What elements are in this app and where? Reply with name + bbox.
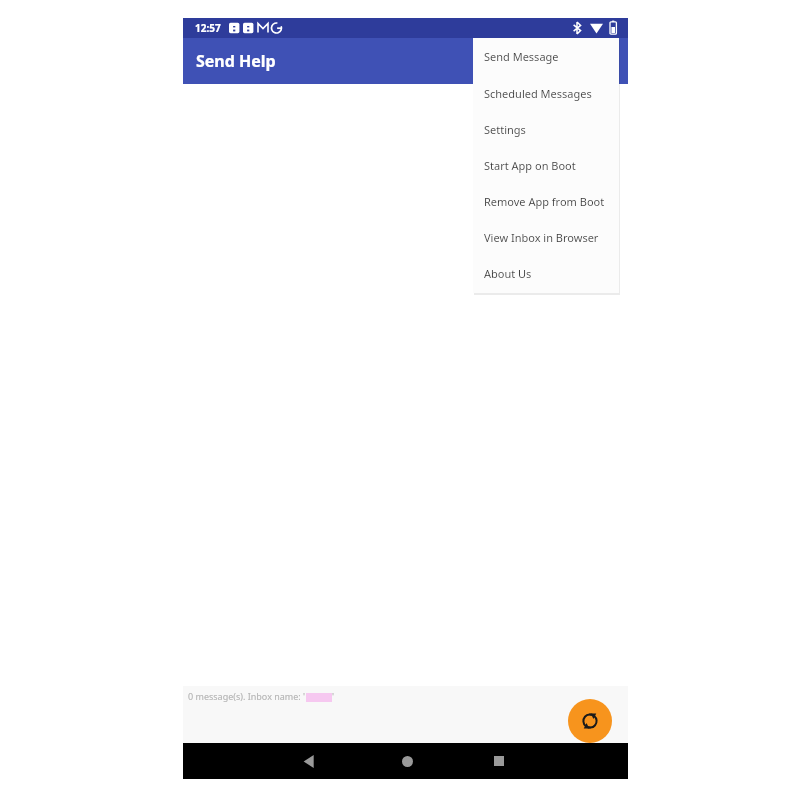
staticText: Scheduled Messages — [484, 86, 592, 101]
staticText: ' — [332, 690, 335, 702]
button[interactable]: View Inbox in Browser — [473, 219, 619, 255]
staticText: Remove App from Boot — [484, 194, 605, 209]
button[interactable]: Start App on Boot — [473, 147, 619, 183]
button[interactable]: Refresh inbox — [568, 699, 612, 743]
staticText: Send Message — [484, 49, 559, 64]
staticText: 12:57 — [195, 21, 221, 35]
button[interactable]: Home — [389, 743, 425, 779]
button[interactable]: Send Message — [473, 38, 619, 75]
button[interactable]: Scheduled Messages — [473, 75, 619, 111]
button[interactable]: Back — [291, 743, 327, 779]
staticText: Start App on Boot — [484, 158, 576, 173]
button[interactable]: Remove App from Boot — [473, 183, 619, 219]
staticText: 0 message(s). Inbox name: ' — [188, 690, 306, 702]
staticText: Send Help — [196, 50, 276, 72]
button[interactable]: Settings — [473, 111, 619, 147]
button[interactable]: Recent apps — [481, 743, 517, 779]
staticText: Settings — [484, 122, 526, 137]
staticText: View Inbox in Browser — [484, 230, 599, 245]
button[interactable]: About Us — [473, 255, 619, 291]
staticText: About Us — [484, 266, 532, 281]
